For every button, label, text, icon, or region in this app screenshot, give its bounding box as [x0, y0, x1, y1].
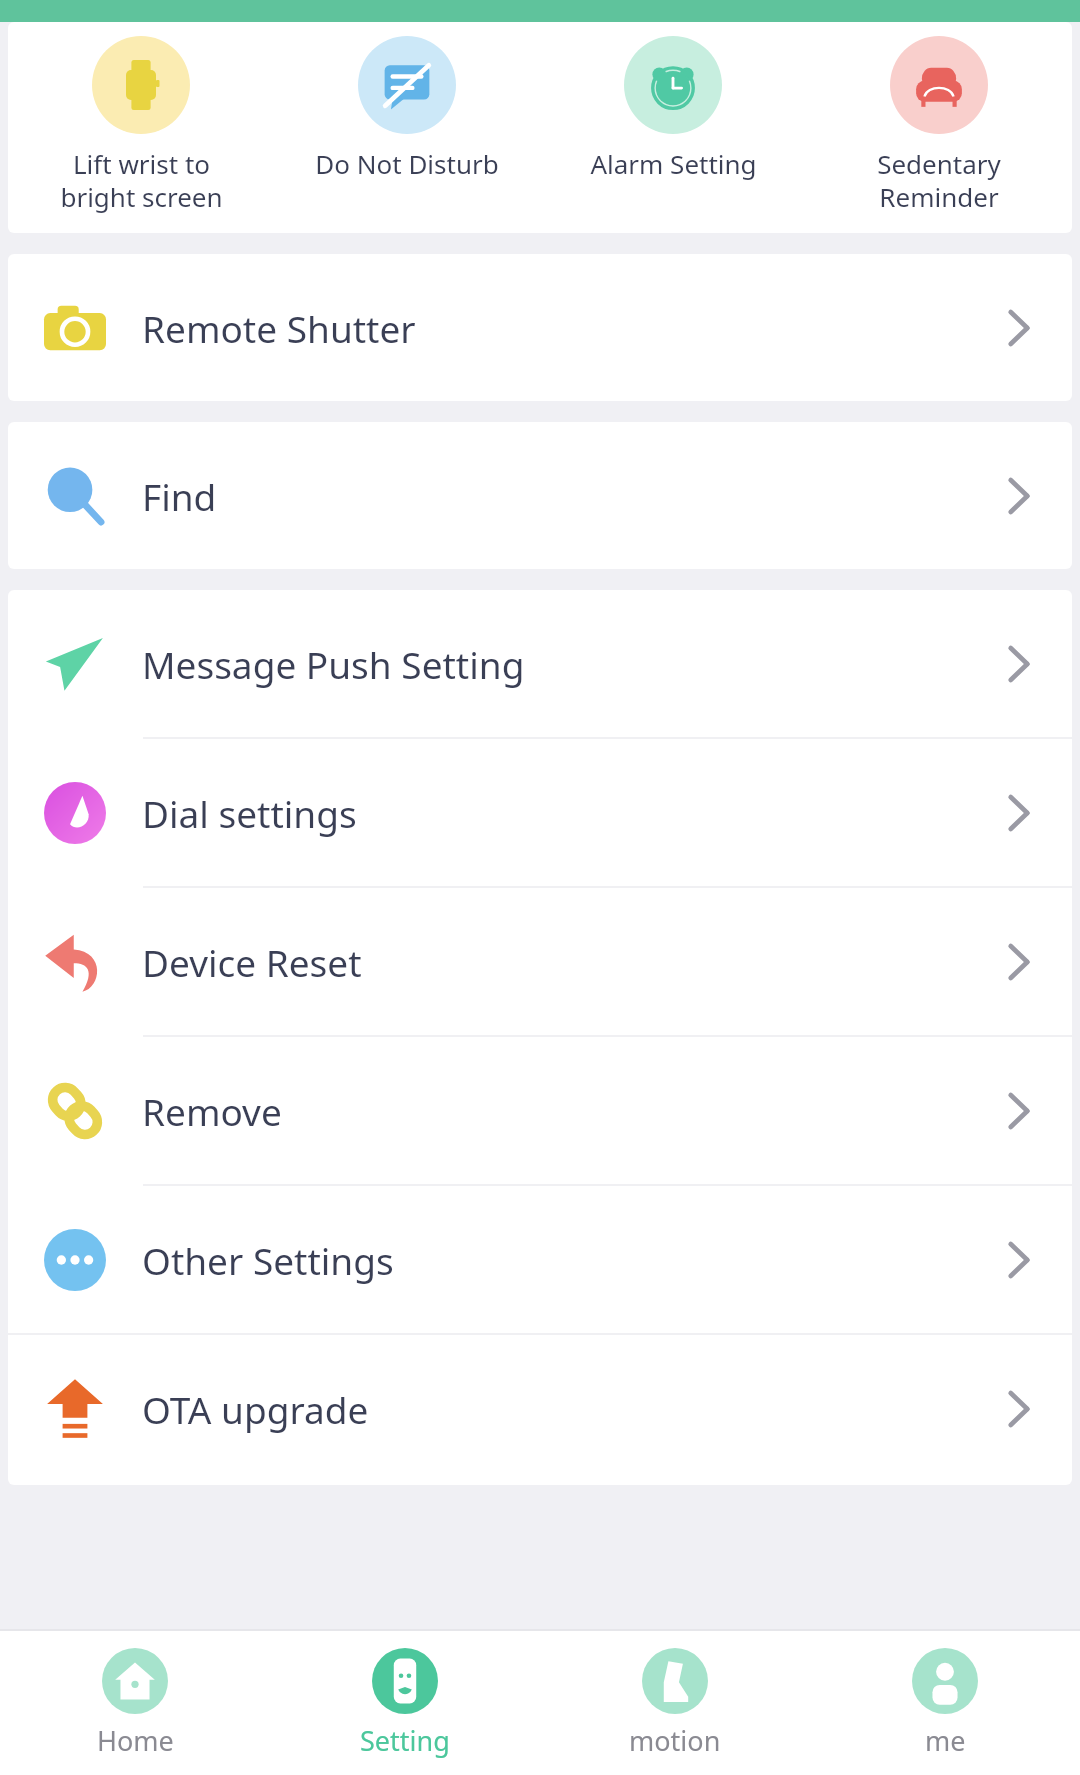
staticText: motion [629, 1722, 721, 1759]
button[interactable]: Setting [270, 1631, 540, 1775]
staticText: Do Not Disturb [315, 146, 499, 181]
button[interactable]: Remote Shutter [8, 254, 1072, 401]
button[interactable]: me [810, 1631, 1080, 1775]
button[interactable]: Message Push Setting [8, 590, 1072, 737]
staticText: Dial settings [142, 788, 357, 838]
button[interactable]: Do Not Disturb [274, 32, 540, 185]
button[interactable]: Find [8, 422, 1072, 569]
button[interactable]: Remove [8, 1037, 1072, 1184]
staticText: Setting [360, 1722, 450, 1759]
staticText: Alarm Setting [590, 146, 757, 181]
staticText: Device Reset [142, 937, 362, 987]
button[interactable]: Dial settings [8, 739, 1072, 886]
staticText: Message Push Setting [142, 639, 525, 689]
staticText: Home [97, 1722, 174, 1759]
button[interactable]: OTA upgrade [8, 1335, 1072, 1482]
button[interactable]: Device Reset [8, 888, 1072, 1035]
button[interactable]: Sedentary Reminder [806, 32, 1072, 219]
button[interactable]: Other Settings [8, 1186, 1072, 1333]
button[interactable]: Home [0, 1631, 270, 1775]
staticText: OTA upgrade [142, 1384, 369, 1434]
staticText: Other Settings [142, 1235, 394, 1285]
staticText: Find [142, 471, 217, 521]
staticText: me [925, 1722, 966, 1759]
staticText: Lift wrist to bright screen [60, 146, 223, 215]
button[interactable]: Alarm Setting [540, 32, 806, 185]
button[interactable]: motion [540, 1631, 810, 1775]
staticText: Sedentary Reminder [877, 146, 1001, 215]
button[interactable]: Lift wrist to bright screen [8, 32, 274, 219]
staticText: Remove [142, 1086, 282, 1136]
staticText: Remote Shutter [142, 303, 416, 353]
